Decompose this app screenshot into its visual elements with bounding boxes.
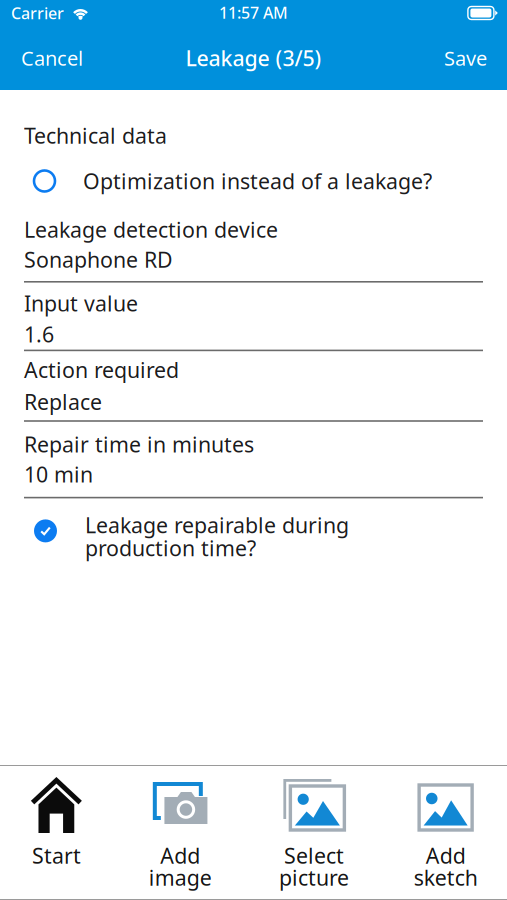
- staticText: 1.6: [24, 320, 54, 348]
- staticText: Carrier: [11, 2, 64, 24]
- button[interactable]: Optimization instead of a leakage?: [24, 146, 483, 198]
- staticText: Replace: [24, 387, 102, 416]
- staticText: Leakage detection device: [24, 215, 278, 244]
- staticText: production time?: [85, 534, 256, 562]
- button[interactable]: Cancel: [11, 34, 93, 82]
- button[interactable]: Select: [253, 766, 380, 899]
- staticText: Leakage repairable during: [85, 511, 349, 539]
- staticText: Cancel: [21, 45, 83, 71]
- button[interactable]: Input value: [24, 283, 483, 351]
- staticText: Add: [426, 841, 466, 870]
- button[interactable]: Add: [127, 766, 254, 899]
- staticText: Input value: [24, 289, 138, 317]
- staticText: Save: [444, 45, 487, 71]
- button[interactable]: Action required: [24, 351, 483, 422]
- button[interactable]: Leakage repairable during: [24, 498, 483, 558]
- button[interactable]: Add: [380, 766, 507, 899]
- staticText: Action required: [24, 355, 179, 384]
- staticText: sketch: [414, 863, 478, 892]
- staticText: Select: [284, 841, 344, 870]
- staticText: Sonaphone RD: [24, 245, 173, 274]
- button[interactable]: Repair time in minutes: [24, 422, 483, 498]
- staticText: picture: [279, 863, 349, 892]
- staticText: 10 min: [24, 460, 93, 488]
- staticText: Leakage (3/5): [185, 44, 321, 72]
- staticText: image: [149, 863, 212, 892]
- button[interactable]: Start: [0, 766, 127, 899]
- button[interactable]: Save: [434, 34, 497, 82]
- staticText: Technical data: [24, 121, 167, 150]
- staticText: Start: [32, 841, 81, 870]
- staticText: Repair time in minutes: [24, 430, 254, 458]
- staticText: Add: [160, 841, 200, 870]
- staticText: Optimization instead of a leakage?: [83, 167, 432, 195]
- button[interactable]: Leakage detection device: [24, 219, 483, 283]
- staticText: 11:57 AM: [219, 2, 288, 23]
